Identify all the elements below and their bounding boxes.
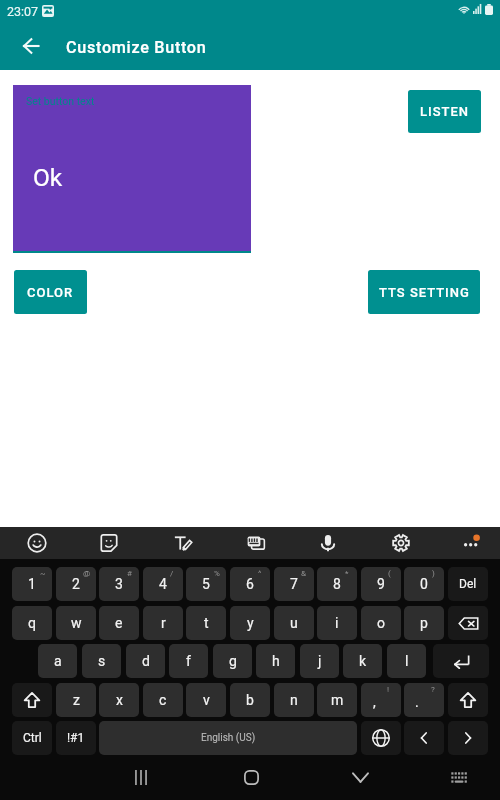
button[interactable]: d — [126, 644, 165, 678]
button[interactable]: TTS SETTING — [368, 270, 480, 314]
button[interactable]: More options — [454, 527, 486, 559]
button[interactable]: Recent apps — [121, 755, 161, 800]
staticText: 4 — [159, 576, 167, 592]
button[interactable]: Settings — [385, 527, 417, 559]
button[interactable]: 5 — [186, 567, 226, 601]
button[interactable]: Home — [231, 755, 271, 800]
button[interactable]: z — [56, 683, 96, 717]
staticText: Set button text — [26, 95, 95, 107]
button[interactable]: p — [404, 606, 444, 640]
button[interactable]: Change keyboard — [439, 755, 479, 800]
button[interactable]: Space — [99, 721, 357, 755]
button[interactable]: Clipboard — [240, 527, 272, 559]
staticText: z — [73, 692, 80, 708]
button[interactable]: h — [256, 644, 295, 678]
button[interactable]: , — [361, 683, 401, 717]
staticText: h — [272, 653, 280, 669]
button[interactable]: LISTEN — [408, 90, 481, 133]
button[interactable]: Hide keyboard — [340, 755, 380, 800]
staticText: k — [359, 653, 367, 669]
staticText: f — [186, 653, 191, 669]
button[interactable]: Shift — [12, 683, 52, 717]
button[interactable]: Backspace — [448, 606, 488, 640]
button[interactable]: s — [82, 644, 121, 678]
button[interactable]: Emoji — [21, 527, 53, 559]
staticText: r — [161, 615, 166, 631]
button[interactable]: 1 — [12, 567, 52, 601]
staticText: COLOR — [27, 285, 74, 300]
button[interactable]: 8 — [317, 567, 357, 601]
button[interactable]: 0 — [404, 567, 444, 601]
staticText: c — [159, 692, 167, 708]
button[interactable]: 3 — [99, 567, 139, 601]
button[interactable]: 7 — [274, 567, 314, 601]
staticText: v — [203, 692, 210, 708]
staticText: w — [71, 615, 82, 631]
staticText: 8 — [333, 576, 341, 592]
staticText: % — [214, 569, 220, 578]
staticText: # — [127, 569, 132, 578]
button[interactable]: Previous — [404, 721, 444, 755]
button[interactable]: j — [300, 644, 339, 678]
button[interactable]: Next — [448, 721, 488, 755]
button[interactable]: Voice input — [312, 527, 344, 559]
button[interactable]: m — [317, 683, 357, 717]
staticText: LISTEN — [420, 104, 470, 119]
staticText: TTS SETTING — [379, 285, 470, 300]
button[interactable]: 9 — [361, 567, 401, 601]
button[interactable]: Set button text — [13, 85, 251, 251]
button[interactable]: i — [317, 606, 357, 640]
button[interactable]: 6 — [230, 567, 270, 601]
button[interactable]: Ctrl — [12, 721, 52, 755]
staticText: / — [170, 569, 174, 578]
button[interactable]: k — [343, 644, 382, 678]
button[interactable]: f — [169, 644, 208, 678]
button[interactable]: 4 — [143, 567, 183, 601]
button[interactable]: y — [230, 606, 270, 640]
staticText: l — [405, 653, 409, 669]
staticText: j — [318, 653, 322, 669]
staticText: d — [142, 653, 150, 669]
button[interactable]: t — [186, 606, 226, 640]
button[interactable]: !#1 — [56, 721, 96, 755]
button[interactable]: v — [186, 683, 226, 717]
button[interactable]: q — [12, 606, 52, 640]
button[interactable]: COLOR — [14, 270, 87, 314]
staticText: @ — [83, 569, 91, 578]
button[interactable]: Handwriting — [167, 527, 199, 559]
button[interactable]: Back — [10, 25, 52, 67]
button[interactable]: Stickers — [93, 527, 125, 559]
button[interactable]: g — [213, 644, 252, 678]
button[interactable]: u — [274, 606, 314, 640]
staticText: * — [345, 569, 349, 578]
button[interactable]: c — [143, 683, 183, 717]
staticText: . — [415, 694, 419, 710]
staticText: u — [290, 615, 298, 631]
staticText: n — [290, 692, 298, 708]
staticText: e — [115, 615, 123, 631]
button[interactable]: n — [274, 683, 314, 717]
button[interactable]: Change language — [361, 721, 401, 755]
staticText: t — [204, 615, 209, 631]
button[interactable]: o — [361, 606, 401, 640]
button[interactable]: Enter — [433, 644, 489, 678]
button[interactable]: a — [38, 644, 77, 678]
button[interactable]: Caps lock — [448, 683, 488, 717]
button[interactable]: b — [230, 683, 270, 717]
staticText: & — [301, 569, 306, 578]
staticText: i — [335, 615, 339, 631]
button[interactable]: w — [56, 606, 96, 640]
button[interactable]: 2 — [56, 567, 96, 601]
staticText: b — [246, 692, 254, 708]
staticText: y — [247, 615, 254, 631]
staticText: ? — [431, 685, 435, 694]
button[interactable]: Del — [448, 567, 488, 601]
button[interactable]: . — [404, 683, 444, 717]
staticText: 9 — [377, 576, 385, 592]
button[interactable]: e — [99, 606, 139, 640]
button[interactable]: r — [143, 606, 183, 640]
staticText: 6 — [246, 576, 254, 592]
button[interactable]: l — [387, 644, 426, 678]
button[interactable]: x — [99, 683, 139, 717]
staticText: 2 — [72, 576, 80, 592]
